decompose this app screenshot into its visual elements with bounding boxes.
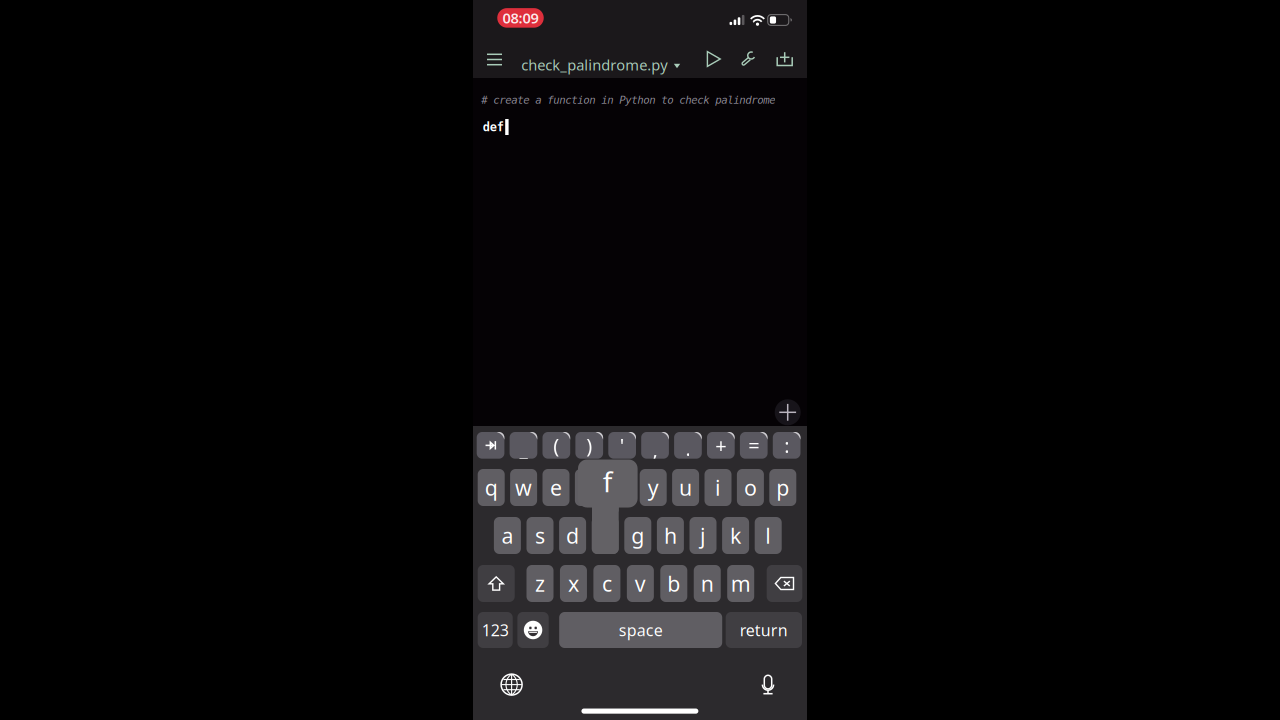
staticText: w bbox=[515, 473, 532, 502]
button[interactable]: _ bbox=[510, 432, 537, 459]
button[interactable]: h bbox=[657, 517, 684, 554]
button[interactable]: d bbox=[559, 517, 586, 554]
staticText: a bbox=[501, 521, 513, 550]
button[interactable]: t bbox=[607, 469, 634, 506]
button[interactable]: f bbox=[592, 517, 619, 554]
button[interactable]: Return bbox=[726, 612, 802, 648]
staticText: + bbox=[715, 432, 726, 459]
staticText: i bbox=[715, 473, 721, 502]
staticText: g bbox=[631, 521, 644, 550]
button[interactable]: Tools bbox=[731, 41, 765, 77]
button[interactable]: check_palindrome.py bbox=[521, 47, 680, 82]
staticText: u bbox=[679, 473, 692, 502]
staticText: k bbox=[730, 521, 741, 550]
button[interactable]: x bbox=[560, 565, 587, 602]
staticText: space bbox=[619, 619, 663, 641]
staticText: d bbox=[566, 521, 579, 550]
staticText: return bbox=[740, 619, 788, 641]
button[interactable]: Tab bbox=[477, 432, 504, 459]
staticText: ) bbox=[586, 432, 592, 459]
button[interactable]: w bbox=[510, 469, 537, 506]
button[interactable]: s bbox=[526, 517, 553, 554]
button[interactable]: q bbox=[478, 469, 505, 506]
staticText: z bbox=[535, 569, 545, 598]
staticText: p bbox=[776, 473, 789, 502]
button[interactable]: p bbox=[769, 469, 796, 506]
button[interactable]: j bbox=[689, 517, 716, 554]
button[interactable]: k bbox=[722, 517, 749, 554]
staticText: ( bbox=[553, 432, 559, 459]
staticText: # create a function in Python to check p… bbox=[481, 94, 775, 106]
staticText: c bbox=[602, 569, 612, 598]
staticText: q bbox=[485, 473, 498, 502]
button[interactable]: Shift bbox=[478, 565, 515, 602]
staticText: n bbox=[701, 569, 714, 598]
button[interactable]: v bbox=[627, 565, 654, 602]
staticText: j bbox=[700, 521, 706, 550]
staticText: e bbox=[550, 473, 562, 502]
button[interactable]: r bbox=[575, 469, 602, 506]
button[interactable]: o bbox=[737, 469, 764, 506]
button[interactable]: c bbox=[593, 565, 620, 602]
staticText: check_palindrome.py bbox=[521, 55, 667, 74]
staticText: v bbox=[635, 569, 646, 598]
staticText: ' bbox=[620, 432, 625, 459]
button[interactable]: Emoji bbox=[517, 612, 549, 648]
button[interactable]: m bbox=[727, 565, 754, 602]
button[interactable]: Space bbox=[559, 612, 722, 648]
staticText: 08:09 bbox=[502, 8, 538, 28]
button[interactable]: + bbox=[707, 432, 735, 459]
button[interactable]: Next keyboard bbox=[495, 668, 529, 702]
staticText: 123 bbox=[482, 619, 509, 641]
staticText: y bbox=[648, 473, 659, 502]
button[interactable]: e bbox=[542, 469, 569, 506]
staticText: o bbox=[744, 473, 757, 502]
button[interactable]: = bbox=[740, 432, 768, 459]
button[interactable]: z bbox=[526, 565, 553, 602]
staticText: x bbox=[568, 569, 579, 598]
staticText: b bbox=[667, 569, 680, 598]
staticText: = bbox=[748, 432, 759, 459]
button[interactable]: Export bbox=[768, 41, 802, 77]
button[interactable]: n bbox=[694, 565, 721, 602]
button[interactable]: y bbox=[640, 469, 667, 506]
button[interactable]: ( bbox=[542, 432, 570, 459]
staticText: . bbox=[685, 435, 690, 462]
button[interactable]: b bbox=[660, 565, 687, 602]
staticText: s bbox=[535, 521, 545, 550]
button[interactable]: a bbox=[494, 517, 521, 554]
button[interactable]: Menu bbox=[477, 41, 511, 77]
button[interactable]: ) bbox=[575, 432, 603, 459]
button[interactable]: . bbox=[674, 432, 702, 459]
button[interactable]: u bbox=[672, 469, 699, 506]
staticText: : bbox=[784, 432, 789, 459]
button[interactable]: Numbers bbox=[478, 612, 513, 648]
button[interactable]: Add bbox=[772, 396, 804, 428]
button[interactable]: : bbox=[773, 432, 800, 459]
button[interactable]: , bbox=[641, 432, 669, 459]
button[interactable]: i bbox=[704, 469, 731, 506]
staticText: , bbox=[653, 436, 658, 463]
staticText: _ bbox=[519, 436, 527, 461]
button[interactable]: l bbox=[755, 517, 782, 554]
staticText: l bbox=[765, 521, 771, 550]
staticText: h bbox=[664, 521, 677, 550]
staticText: m bbox=[731, 569, 751, 598]
staticText: def bbox=[483, 120, 504, 134]
button[interactable]: ' bbox=[608, 432, 636, 459]
staticText: f bbox=[603, 463, 613, 500]
button[interactable]: Dictate bbox=[751, 668, 785, 702]
button[interactable]: g bbox=[624, 517, 651, 554]
button[interactable]: Run bbox=[697, 41, 731, 77]
button[interactable]: Delete bbox=[767, 565, 802, 602]
